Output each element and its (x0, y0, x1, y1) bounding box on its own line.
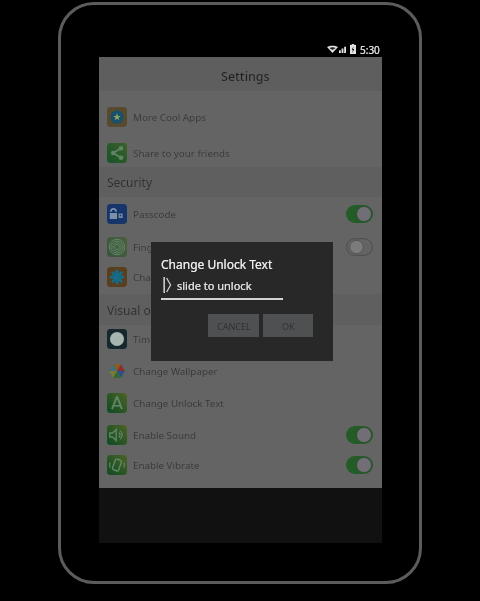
staticText: slide to unlock (177, 278, 252, 293)
staticText: Share to your friends (133, 147, 230, 160)
button[interactable]: OK (263, 314, 313, 337)
staticText: Security (107, 174, 153, 190)
staticText: Passcode (133, 208, 176, 221)
staticText: Enable Vibrate (133, 459, 200, 472)
staticText: Enable Sound (133, 429, 197, 442)
button[interactable]: Change Passcode (99, 261, 382, 293)
button[interactable]: CANCEL (208, 314, 259, 337)
staticText: CANCEL (217, 320, 251, 332)
button[interactable]: Enable Vibrate (99, 449, 382, 481)
staticText: Change Unlock Text (133, 397, 224, 410)
staticText: Fingerprint Unlock (133, 241, 219, 254)
staticText: Time Format (133, 333, 192, 346)
staticText: Change Passcode (133, 271, 214, 284)
button[interactable]: Fingerprint Unlock (99, 231, 382, 263)
button[interactable]: More Cool Apps (99, 101, 382, 133)
staticText: 5:30 (360, 43, 380, 57)
button[interactable]: Change Unlock Text (99, 387, 382, 419)
staticText: Change Unlock Text (161, 256, 273, 272)
staticText: Settings (221, 68, 270, 85)
button[interactable]: Enable Sound (99, 419, 382, 451)
button[interactable]: Passcode (99, 198, 382, 230)
button[interactable]: Change Wallpaper (99, 355, 382, 387)
staticText: More Cool Apps (133, 111, 206, 124)
staticText: OK (282, 320, 295, 332)
button[interactable]: Share to your friends (99, 137, 382, 169)
button[interactable]: Time Format (99, 323, 382, 355)
staticText: Visual options (107, 302, 186, 318)
button[interactable]: Settings (99, 57, 382, 91)
staticText: Change Wallpaper (133, 365, 218, 378)
